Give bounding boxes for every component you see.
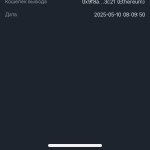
staticText: Дата xyxy=(5,11,17,17)
staticText: Кошелек вывода xyxy=(5,0,47,4)
staticText: 0x9f8a...3c21 (Ethereum) xyxy=(82,0,145,5)
staticText: 2025-05-10 08:09:50 xyxy=(94,11,145,18)
